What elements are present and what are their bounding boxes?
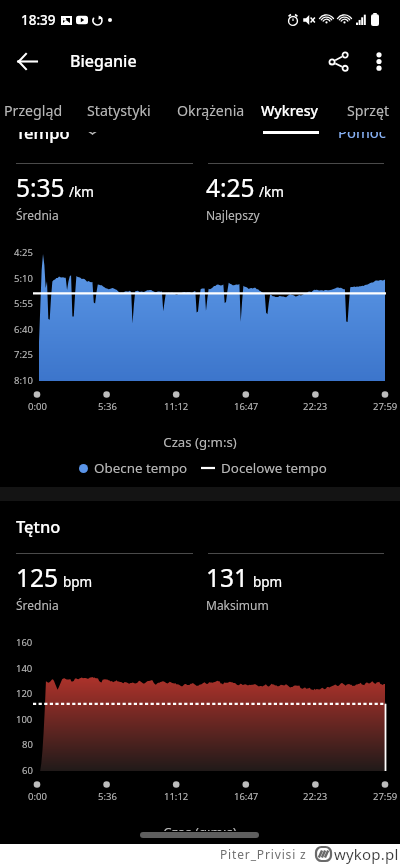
button[interactable]: Okrążenia [164, 92, 258, 135]
staticText: Piter_Privisi z [220, 846, 307, 862]
staticText: 18:39 [21, 11, 56, 29]
staticText: 125 [16, 561, 59, 594]
staticText: 60 [22, 764, 33, 777]
staticText: 4:25 [206, 171, 255, 204]
staticText: 0:00 [28, 400, 47, 413]
staticText: 100 [16, 713, 33, 726]
staticText: Sprzęt [347, 101, 390, 120]
button[interactable]: Przegląd [0, 92, 73, 135]
staticText: Tętno [16, 515, 61, 537]
button[interactable]: Pomoc [338, 132, 386, 142]
staticText: 6:40 [14, 323, 33, 336]
staticText: Najlepszy [206, 207, 260, 223]
staticText: Wykresy [261, 101, 319, 120]
staticText: 16:47 [234, 790, 259, 803]
button[interactable]: Statystyki [72, 92, 165, 135]
staticText: 22:23 [303, 790, 328, 803]
staticText: 27:59 [373, 790, 398, 803]
button[interactable]: Share [316, 39, 360, 83]
staticText: 27:59 [373, 400, 398, 413]
staticText: Bieganie [70, 50, 137, 72]
button[interactable]: Back [5, 39, 49, 83]
staticText: 8:10 [14, 374, 33, 387]
staticText: Przegląd [4, 101, 63, 120]
staticText: 5:36 [98, 790, 117, 803]
staticText: /km [259, 183, 284, 201]
staticText: Okrążenia [177, 101, 245, 120]
staticText: 11:12 [164, 790, 189, 803]
staticText: Czas (g:m:s) [0, 823, 400, 831]
staticText: 80 [22, 738, 33, 751]
staticText: 4:25 [14, 246, 33, 259]
staticText: 131 [206, 561, 249, 594]
staticText: bpm [253, 573, 283, 591]
staticText: 5:10 [14, 272, 33, 285]
staticText: Statystyki [87, 101, 151, 120]
staticText: Tempo [16, 132, 70, 143]
staticText: 22:23 [303, 400, 328, 413]
staticText: Maksimum [206, 597, 269, 613]
staticText: 160 [16, 636, 33, 649]
button[interactable]: Sprzęt [333, 92, 400, 135]
staticText: 11:12 [164, 400, 189, 413]
staticText: 5:35 [16, 171, 65, 204]
staticText: 5:36 [98, 400, 117, 413]
staticText: Docelowe tempo [221, 459, 327, 477]
staticText: Obecne tempo [94, 459, 188, 477]
staticText: 16:47 [234, 400, 259, 413]
staticText: bpm [63, 573, 93, 591]
staticText: 0:00 [28, 790, 47, 803]
button[interactable]: More options [357, 39, 400, 83]
staticText: 5:55 [14, 297, 33, 310]
staticText: Średnia [16, 597, 59, 613]
button[interactable]: Wykresy [249, 92, 331, 135]
staticText: wykop.pl [334, 844, 399, 864]
staticText: Czas (g:m:s) [0, 433, 400, 451]
staticText: 7:25 [14, 348, 33, 361]
staticText: Średnia [16, 207, 59, 223]
staticText: /km [69, 183, 94, 201]
staticText: 120 [16, 687, 33, 700]
staticText: 140 [16, 662, 33, 675]
